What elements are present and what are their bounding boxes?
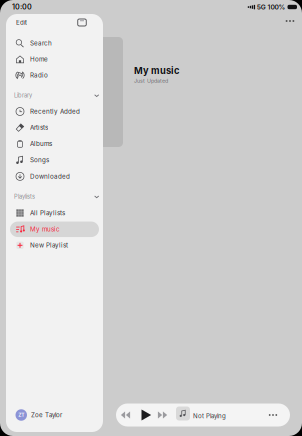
staticText: Recently Added [30,108,80,115]
button[interactable]: Downloaded [10,169,99,184]
staticText: Playlists [14,193,35,200]
button[interactable]: Radio [10,67,99,83]
button[interactable]: Playlists [14,192,99,202]
button[interactable]: My music [10,222,99,237]
button[interactable]: Hide Sidebar [76,17,88,28]
staticText: ZT [18,412,24,418]
staticText: Zoe Taylor [31,411,62,419]
staticText: New Playlist [30,241,68,249]
staticText: Library [14,92,32,99]
staticText: Not Playing [193,412,226,420]
button[interactable]: Artists [10,120,99,135]
button[interactable]: Library [14,90,99,100]
staticText: Artists [30,124,48,131]
staticText: My music [134,65,179,76]
button[interactable]: Play [138,403,154,426]
button[interactable]: Search [10,35,99,51]
button[interactable]: New Playlist [10,238,99,253]
button[interactable]: ZT [10,407,99,423]
button[interactable]: Edit [16,17,32,28]
button[interactable]: Playback options [264,407,282,423]
staticText: 5G [257,3,266,11]
button[interactable]: Next [154,403,170,426]
staticText: Radio [30,71,48,79]
staticText: Home [30,55,48,63]
button[interactable]: More [281,14,299,28]
staticText: Downloaded [30,173,70,180]
staticText: All Playlists [30,209,65,217]
staticText: 10:00 [12,2,32,11]
staticText: 100% [267,3,285,11]
staticText: Edit [16,19,27,26]
staticText: Search [30,39,52,47]
button[interactable]: Albums [10,136,99,151]
button[interactable]: Recently Added [10,104,99,119]
staticText: Songs [30,156,49,164]
button[interactable]: Home [10,51,99,67]
button[interactable]: Songs [10,152,99,168]
button[interactable]: Previous [119,403,135,426]
staticText: Albums [30,140,52,147]
button[interactable]: All Playlists [10,205,99,221]
staticText: Just Updated [134,77,168,84]
staticText: My music [30,225,60,233]
